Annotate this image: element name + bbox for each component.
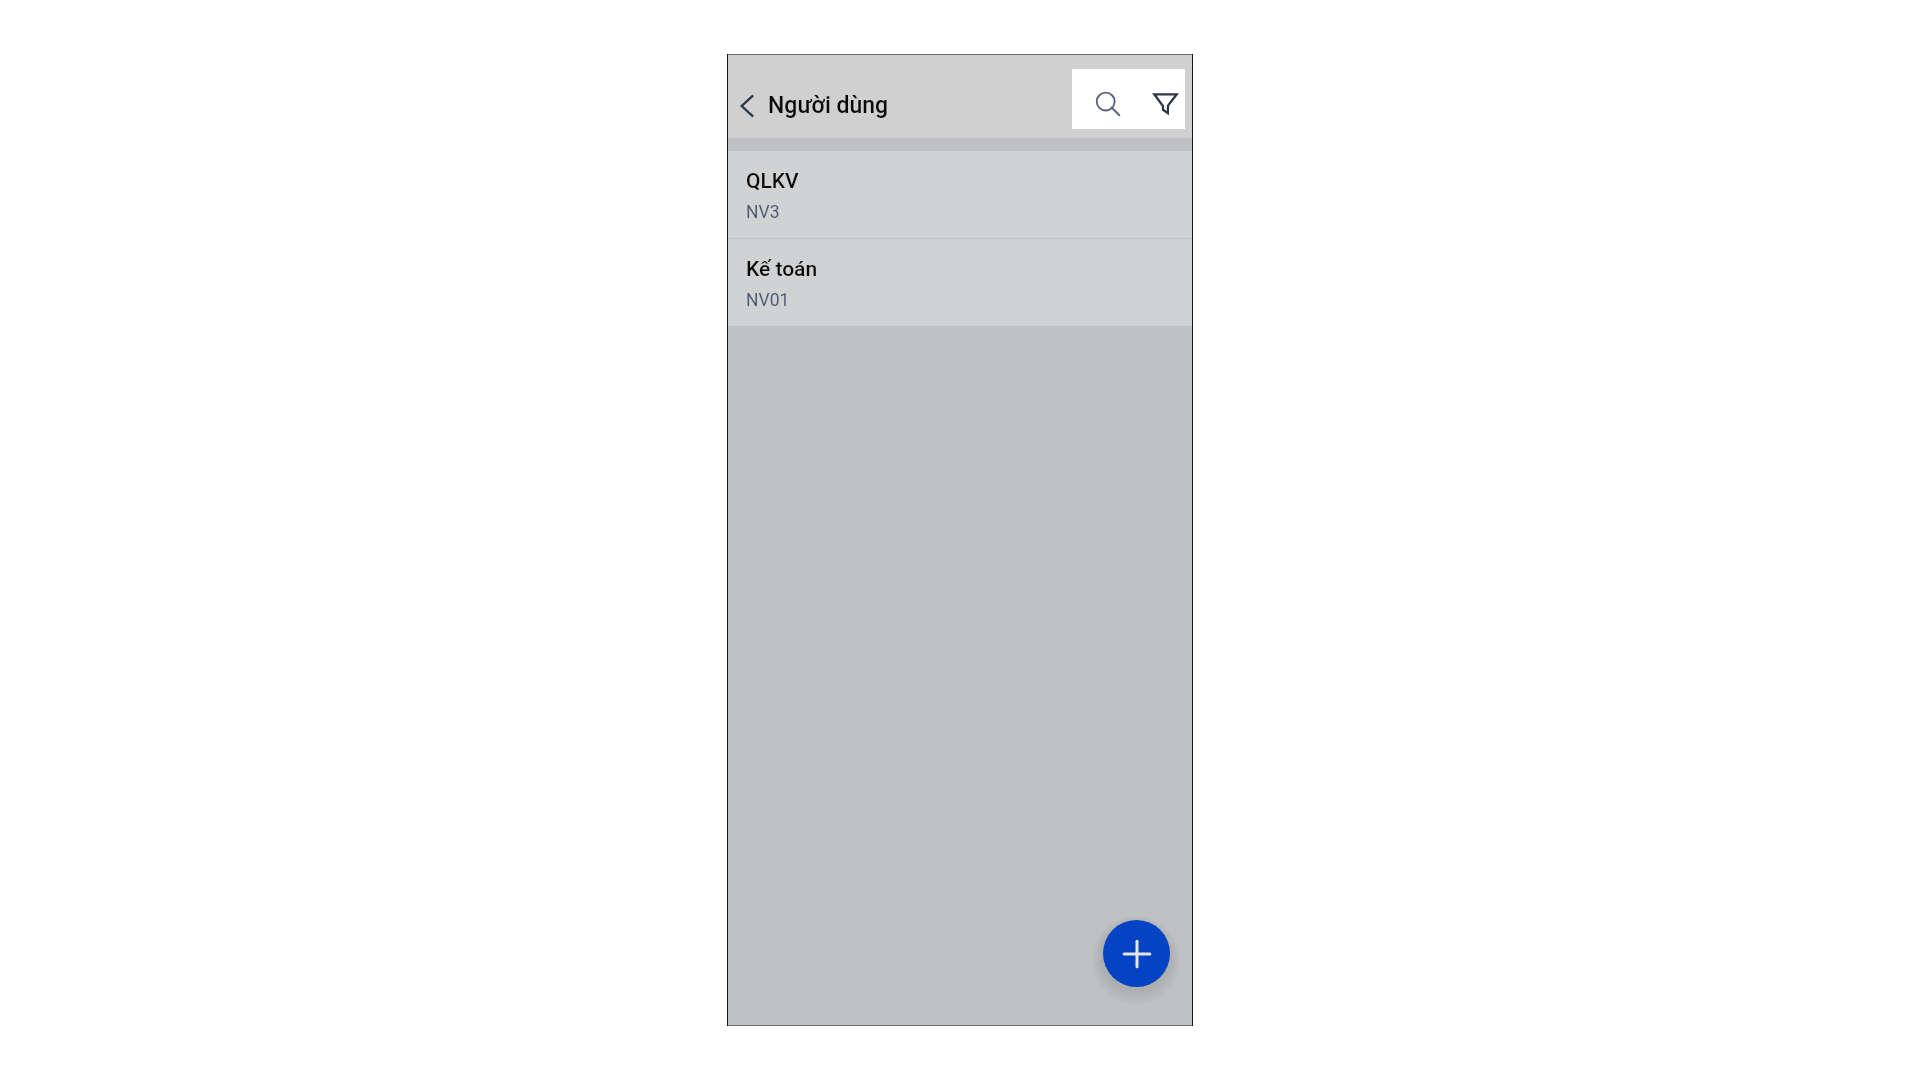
button[interactable]: Quay lại [730,85,764,127]
button[interactable]: QLKV [728,151,1192,238]
staticText: QLKV [746,169,799,194]
staticText: NV3 [746,202,780,223]
button[interactable]: Tìm kiếm [1078,78,1138,131]
button[interactable]: Thêm người dùng [1103,920,1170,987]
button[interactable]: Kế toán [728,239,1192,326]
button[interactable]: Lọc [1142,77,1188,130]
staticText: NV01 [746,290,790,311]
staticText: Người dùng [768,92,889,119]
staticText: Kế toán [746,257,818,282]
